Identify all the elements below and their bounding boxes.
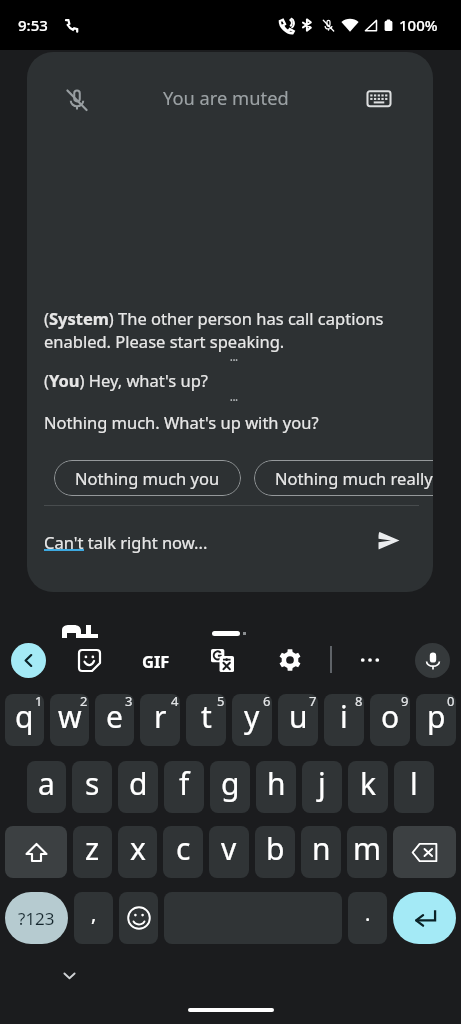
staticText: 100%	[399, 15, 438, 35]
staticText: 3	[125, 694, 133, 710]
staticText: u	[289, 696, 308, 737]
staticText: x	[130, 828, 146, 869]
button[interactable]: Emoji	[119, 892, 158, 944]
button[interactable]: q	[5, 694, 44, 746]
staticText: ?123	[18, 907, 55, 930]
staticText: Nothing much you	[75, 467, 220, 489]
button[interactable]: m	[347, 826, 387, 878]
staticText: n	[312, 828, 331, 869]
staticText: .	[365, 900, 371, 927]
button[interactable]: Shift	[5, 826, 67, 878]
staticText: j	[318, 763, 326, 804]
button[interactable]: s	[72, 761, 112, 813]
staticText: a	[38, 763, 55, 804]
staticText: Can't talk right now...	[44, 531, 208, 553]
button[interactable]: .	[348, 892, 387, 944]
staticText: 9:53	[18, 15, 48, 35]
staticText: c	[176, 828, 191, 869]
staticText: b	[266, 828, 285, 869]
staticText: k	[360, 763, 377, 804]
staticText: Nothing much really	[275, 467, 433, 489]
button[interactable]: Keyboard	[355, 75, 403, 123]
button[interactable]: y	[232, 694, 272, 746]
button[interactable]: o	[370, 694, 410, 746]
button[interactable]: v	[209, 826, 249, 878]
button[interactable]: h	[256, 761, 296, 813]
staticText: g	[221, 763, 240, 804]
staticText: 8	[355, 694, 363, 710]
button[interactable]: GIF	[139, 644, 173, 678]
button[interactable]: n	[301, 826, 341, 878]
staticText: 6	[263, 694, 271, 710]
button[interactable]: x	[118, 826, 157, 878]
button[interactable]: Translate	[202, 640, 242, 680]
button[interactable]: Back	[11, 643, 46, 678]
staticText: s	[85, 763, 100, 804]
staticText: 4	[171, 694, 179, 710]
button[interactable]: l	[394, 761, 434, 813]
staticText: ,	[91, 900, 97, 927]
staticText: 9	[401, 694, 409, 710]
button[interactable]: Hide keyboard	[50, 956, 88, 994]
button[interactable]: c	[163, 826, 203, 878]
button[interactable]: ,	[74, 892, 113, 944]
staticText: GIF	[142, 650, 170, 672]
staticText: y	[244, 696, 260, 737]
staticText: 1	[35, 694, 43, 710]
staticText: You are muted	[163, 85, 289, 110]
button[interactable]: Settings	[270, 640, 310, 680]
button[interactable]: i	[324, 694, 364, 746]
staticText: i	[340, 696, 348, 737]
button[interactable]: Nothing much you	[54, 460, 241, 496]
button[interactable]: ?123	[5, 892, 68, 944]
staticText: (You) Hey, what's up?	[44, 369, 209, 391]
staticText: •••	[230, 396, 238, 406]
staticText: h	[267, 763, 286, 804]
staticText: (System) The other person has call capti…	[44, 307, 421, 353]
button[interactable]: z	[73, 826, 112, 878]
button[interactable]: g	[210, 761, 250, 813]
staticText: p	[427, 696, 446, 737]
staticText: 2	[80, 694, 88, 710]
button[interactable]: Nothing much really	[254, 460, 433, 496]
button[interactable]: k	[348, 761, 388, 813]
button[interactable]: Enter	[393, 892, 456, 944]
button[interactable]: f	[164, 761, 204, 813]
staticText: 0	[447, 694, 455, 710]
button[interactable]: More options	[350, 640, 390, 680]
staticText: f	[179, 763, 190, 804]
button[interactable]: Unmute	[52, 75, 102, 125]
button[interactable]: p	[416, 694, 456, 746]
button[interactable]: t	[186, 694, 226, 746]
button[interactable]: w	[50, 694, 89, 746]
button[interactable]: Backspace	[393, 826, 456, 878]
button[interactable]: e	[95, 694, 134, 746]
staticText: o	[381, 696, 400, 737]
staticText: z	[85, 828, 100, 869]
staticText: l	[410, 763, 418, 804]
button[interactable]: j	[302, 761, 342, 813]
button[interactable]: Send	[377, 520, 421, 564]
button[interactable]: d	[118, 761, 158, 813]
button[interactable]: Stickers	[69, 640, 109, 680]
staticText: 5	[217, 694, 225, 710]
staticText: 7	[309, 694, 317, 710]
button[interactable]: r	[140, 694, 180, 746]
staticText: e	[106, 696, 123, 737]
staticText: r	[154, 696, 167, 737]
staticText: t	[201, 696, 212, 737]
staticText: d	[129, 763, 148, 804]
button[interactable]: u	[278, 694, 318, 746]
staticText: Nothing much. What's up with you?	[44, 411, 319, 433]
button[interactable]: b	[255, 826, 295, 878]
button[interactable]: a	[27, 761, 66, 813]
staticText: •••	[230, 356, 238, 366]
staticText: w	[58, 696, 82, 737]
staticText: m	[353, 828, 382, 869]
staticText: v	[221, 828, 237, 869]
button[interactable]: Voice input	[415, 643, 450, 678]
staticText: q	[15, 696, 34, 737]
